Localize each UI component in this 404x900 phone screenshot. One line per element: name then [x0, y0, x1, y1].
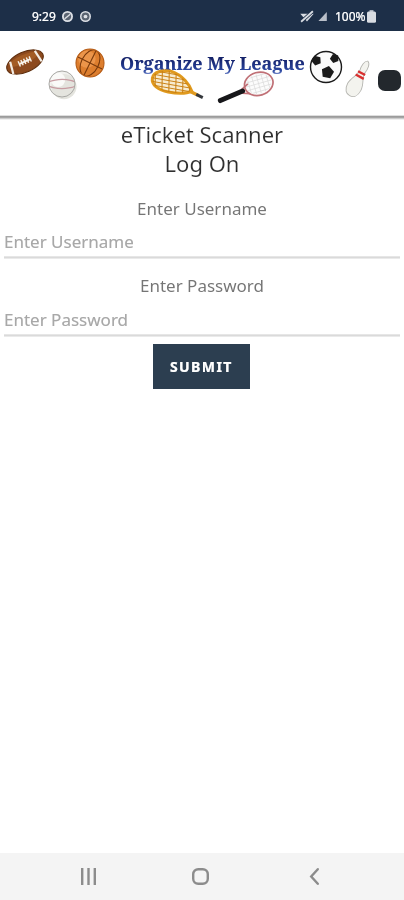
- staticText: Enter Password: [0, 274, 404, 297]
- button[interactable]: Recent apps: [60, 853, 117, 900]
- staticText: 100%: [335, 8, 366, 24]
- button[interactable]: SUBMIT: [153, 344, 250, 389]
- button[interactable]: Back: [286, 853, 343, 900]
- staticText: SUBMIT: [170, 357, 233, 376]
- staticText: Enter Username: [4, 230, 134, 253]
- staticText: Enter Username: [0, 197, 404, 220]
- staticText: 9:29: [32, 8, 56, 24]
- staticText: eTicket Scanner Log On: [0, 119, 404, 178]
- button[interactable]: Home: [172, 853, 229, 900]
- staticText: Enter Password: [4, 308, 129, 331]
- staticText: Organize My League: [120, 51, 305, 76]
